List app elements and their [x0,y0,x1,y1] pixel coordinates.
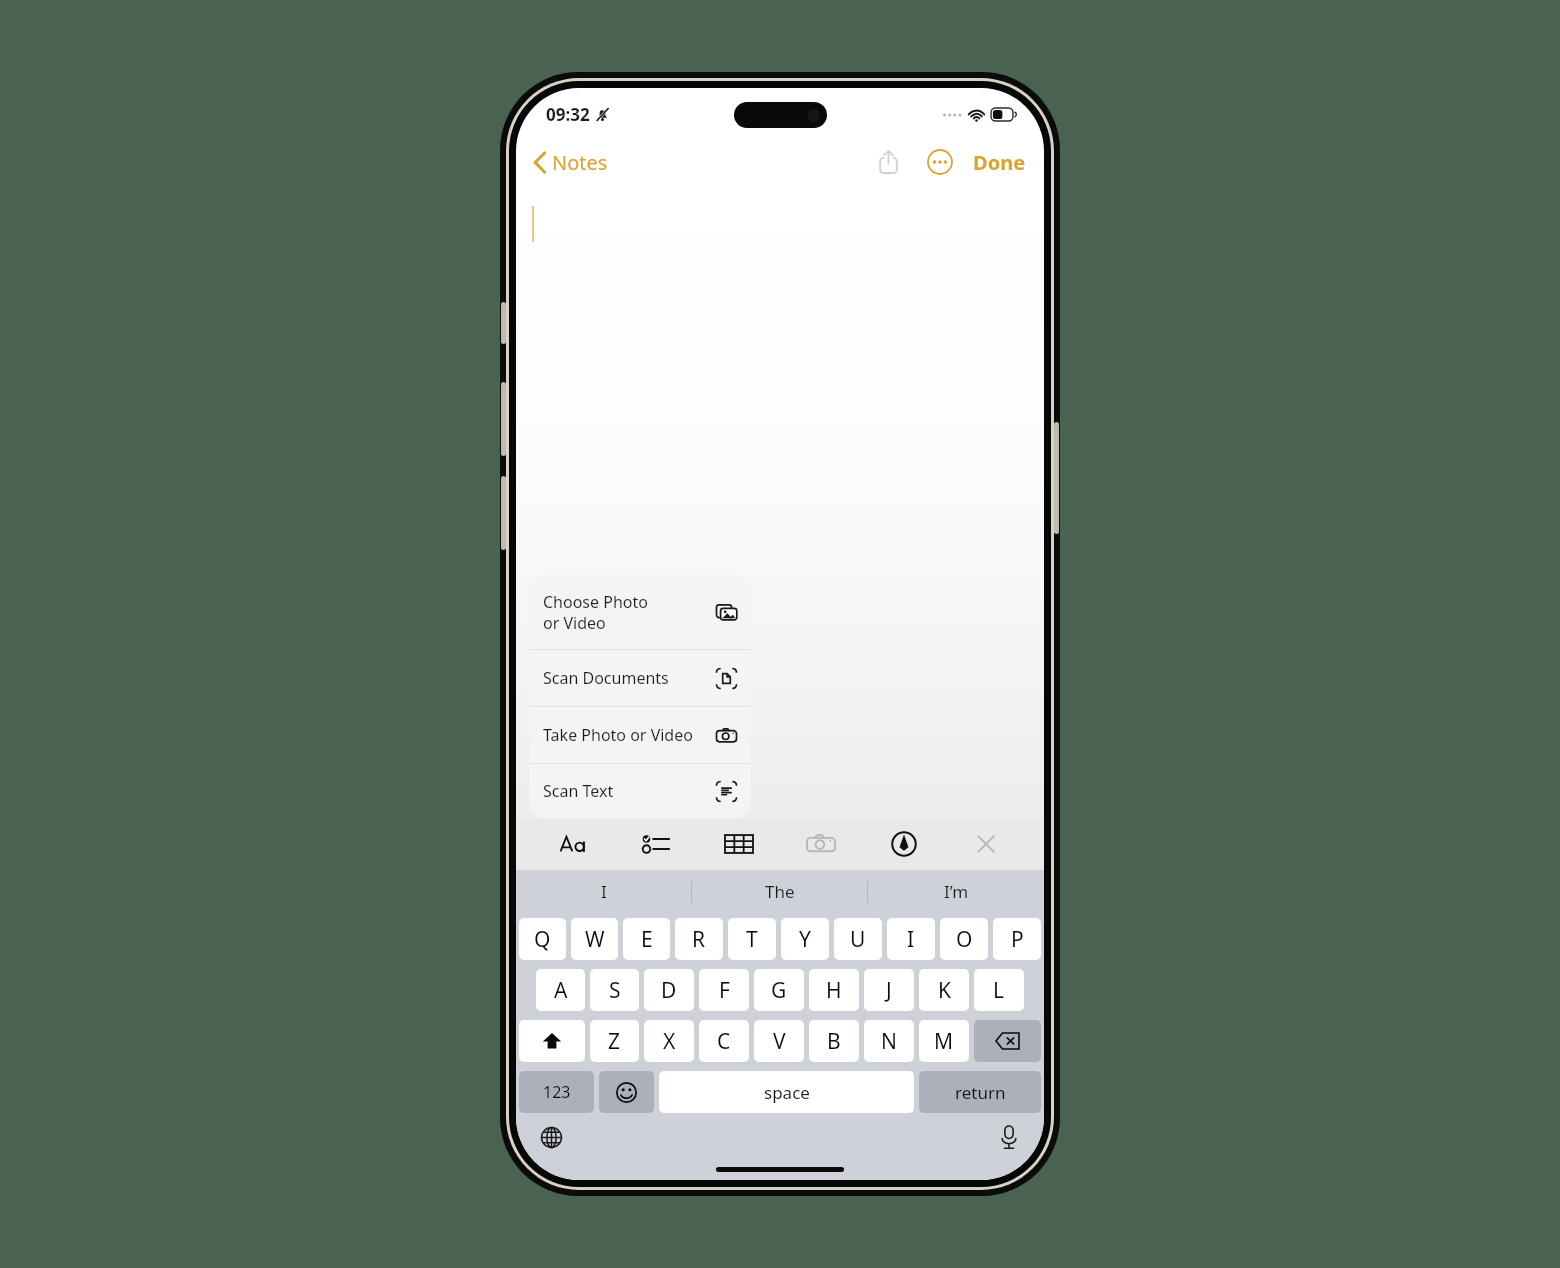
button[interactable]: Emoji [599,1071,654,1113]
button[interactable]: Scan Documents [530,650,750,706]
staticText: D [661,976,677,1005]
button[interactable]: Backspace [974,1020,1041,1062]
staticText: O [956,925,973,954]
staticText: Z [608,1027,621,1056]
button[interactable]: D [644,969,694,1011]
staticText: B [827,1027,841,1056]
button[interactable]: L [974,969,1024,1011]
staticText: X [663,1027,676,1056]
staticText: E [641,925,653,954]
button[interactable]: I [887,918,935,960]
staticText: Take Photo or Video [543,724,693,746]
button[interactable]: space [659,1071,914,1113]
button[interactable]: return [919,1071,1041,1113]
button[interactable]: X [644,1020,694,1062]
staticText: The [765,880,795,903]
staticText: I’m [944,880,969,903]
staticText: 09:32 [546,103,590,126]
button[interactable]: W [571,918,618,960]
button[interactable]: Shift [519,1020,585,1062]
button[interactable]: Y [781,918,829,960]
button[interactable]: J [864,969,914,1011]
staticText: J [886,976,892,1005]
staticText: Scan Text [543,780,614,802]
button[interactable]: The [692,870,868,913]
button[interactable]: Choose Photo or Video [530,575,750,649]
button[interactable]: A [536,969,585,1011]
button[interactable]: F [699,969,749,1011]
button[interactable]: I [516,870,692,913]
button[interactable]: Done [967,144,1032,181]
button[interactable]: B [809,1020,859,1062]
button[interactable]: G [754,969,804,1011]
button[interactable]: K [919,969,969,1011]
staticText: space [764,1081,810,1104]
button[interactable]: E [623,918,670,960]
button[interactable]: Camera [796,821,846,867]
button[interactable]: Share [867,141,909,183]
button[interactable]: Markup [879,821,929,867]
staticText: K [938,976,951,1005]
staticText: G [771,976,787,1005]
staticText: 123 [543,1081,571,1103]
staticText: I [907,925,915,954]
staticText: C [717,1027,731,1056]
button[interactable]: Dictation [992,1120,1026,1154]
button[interactable]: More options [919,141,961,183]
staticText: I [601,880,607,903]
staticText: F [719,976,730,1005]
button[interactable]: M [919,1020,969,1062]
button[interactable]: Change keyboard [534,1120,568,1154]
staticText: P [1011,925,1024,954]
staticText: A [554,976,568,1005]
button[interactable]: O [940,918,988,960]
staticText: return [955,1081,1006,1104]
button[interactable]: V [754,1020,804,1062]
staticText: T [746,925,758,954]
staticText: Y [799,925,811,954]
button[interactable]: H [809,969,859,1011]
staticText: Done [973,149,1026,176]
staticText: H [826,976,842,1005]
button[interactable]: Checklist [631,821,681,867]
staticText: Q [534,925,551,954]
staticText: Notes [552,149,608,176]
staticText: W [585,925,605,954]
button[interactable]: I’m [868,870,1044,913]
button[interactable]: Close [961,821,1011,867]
button[interactable]: P [993,918,1041,960]
staticText: N [881,1027,897,1056]
button[interactable]: Table [714,821,764,867]
staticText: R [692,925,706,954]
staticText: Scan Documents [543,667,669,689]
button[interactable]: Text format [549,821,599,867]
button[interactable]: 123 [519,1071,594,1113]
staticText: S [609,976,621,1005]
button[interactable]: Take Photo or Video [530,707,750,763]
button[interactable]: C [699,1020,749,1062]
button[interactable]: U [834,918,882,960]
button[interactable]: Scan Text [530,764,750,818]
button[interactable]: Z [590,1020,639,1062]
button[interactable]: T [728,918,776,960]
button[interactable]: N [864,1020,914,1062]
button[interactable]: Q [519,918,566,960]
staticText: Choose Photo or Video [543,591,648,634]
staticText: L [993,976,1005,1005]
staticText: V [773,1027,786,1056]
staticText: M [934,1027,954,1056]
button[interactable]: Notes [528,145,614,180]
button[interactable]: S [590,969,639,1011]
staticText: U [850,925,866,954]
button[interactable]: R [675,918,723,960]
